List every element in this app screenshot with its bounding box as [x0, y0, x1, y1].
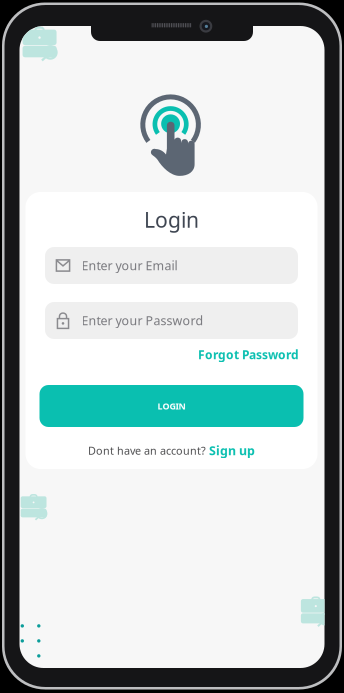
staticText: Forgot Password	[198, 346, 299, 363]
staticText: Login	[144, 205, 199, 234]
staticText: Enter your Email	[81, 257, 177, 274]
button[interactable]: LOGIN	[39, 385, 303, 427]
staticText: LOGIN	[157, 400, 185, 412]
button[interactable]: Sign up	[209, 442, 255, 459]
button[interactable]: Forgot Password	[198, 346, 299, 363]
button[interactable]: Enter your Password	[45, 302, 298, 339]
staticText: Enter your Password	[81, 312, 203, 329]
button[interactable]: Enter your Email	[45, 247, 298, 284]
staticText: Dont have an account?	[88, 443, 206, 458]
staticText: Sign up	[209, 442, 255, 459]
